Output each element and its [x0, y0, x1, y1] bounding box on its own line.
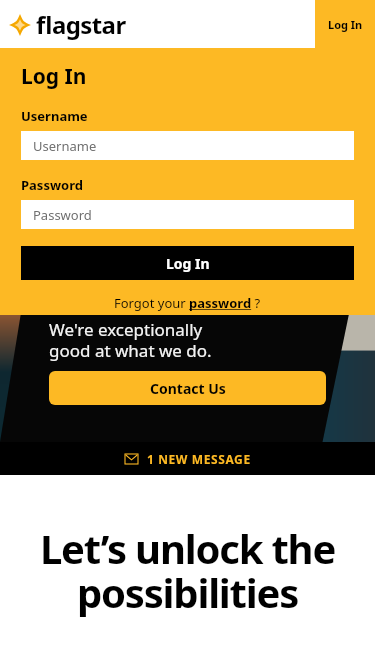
button[interactable]: Contact Us: [49, 371, 326, 405]
staticText: Log In: [21, 62, 87, 91]
button[interactable]: Log In: [21, 246, 354, 280]
button[interactable]: Flagstar home: [9, 8, 126, 41]
staticText: Password: [33, 206, 92, 224]
staticText: Let’s unlock the possibilities: [4, 521, 371, 620]
staticText: Forgot your password ?: [114, 294, 261, 312]
button[interactable]: Password: [21, 200, 354, 229]
staticText: Log In: [166, 254, 210, 273]
staticText: Username: [21, 107, 88, 125]
staticText: Log In: [328, 17, 363, 32]
staticText: Contact Us: [150, 379, 226, 398]
staticText: We're exceptionally good at what we do.: [49, 318, 326, 362]
button[interactable]: Log In: [315, 0, 375, 48]
button[interactable]: Username: [21, 131, 354, 160]
staticText: flagstar: [36, 8, 126, 41]
staticText: 1 NEW MESSAGE: [147, 451, 251, 467]
staticText: Username: [33, 137, 97, 155]
button[interactable]: Forgot your password ?: [21, 294, 354, 312]
button[interactable]: 1 NEW MESSAGE: [0, 442, 375, 475]
staticText: Password: [21, 176, 83, 194]
